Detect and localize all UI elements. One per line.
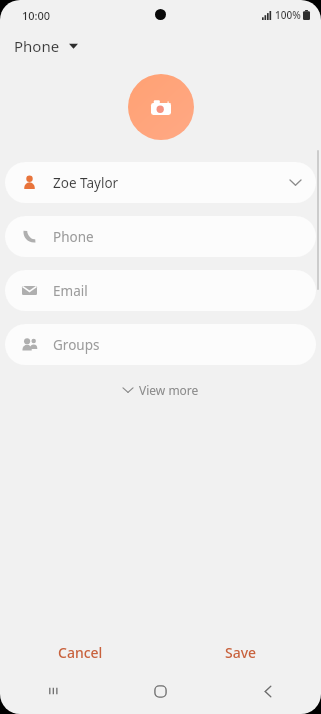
staticText: Zoe Taylor — [53, 174, 119, 192]
button[interactable]: Phone — [0, 30, 321, 62]
staticText: 10:00 — [22, 8, 51, 23]
staticText: Groups — [53, 336, 100, 354]
button[interactable]: Groups — [5, 324, 316, 365]
staticText: Phone — [53, 228, 94, 246]
staticText: View more — [139, 382, 199, 398]
button[interactable]: Phone — [5, 216, 316, 257]
staticText: 100% — [275, 8, 301, 22]
button[interactable]: Recent apps — [0, 676, 107, 706]
button[interactable]: Email — [5, 270, 316, 311]
button[interactable]: Cancel — [0, 632, 160, 672]
button[interactable]: Home — [107, 676, 214, 706]
button[interactable]: Save — [160, 632, 321, 672]
staticText: Save — [225, 643, 257, 662]
button[interactable]: Back — [214, 676, 321, 706]
button[interactable]: Zoe Taylor — [5, 162, 316, 203]
staticText: Email — [53, 282, 88, 300]
button[interactable]: Add contact photo — [128, 74, 194, 140]
staticText: Cancel — [58, 643, 103, 662]
button[interactable]: View more — [111, 376, 211, 404]
staticText: Phone — [14, 36, 60, 56]
